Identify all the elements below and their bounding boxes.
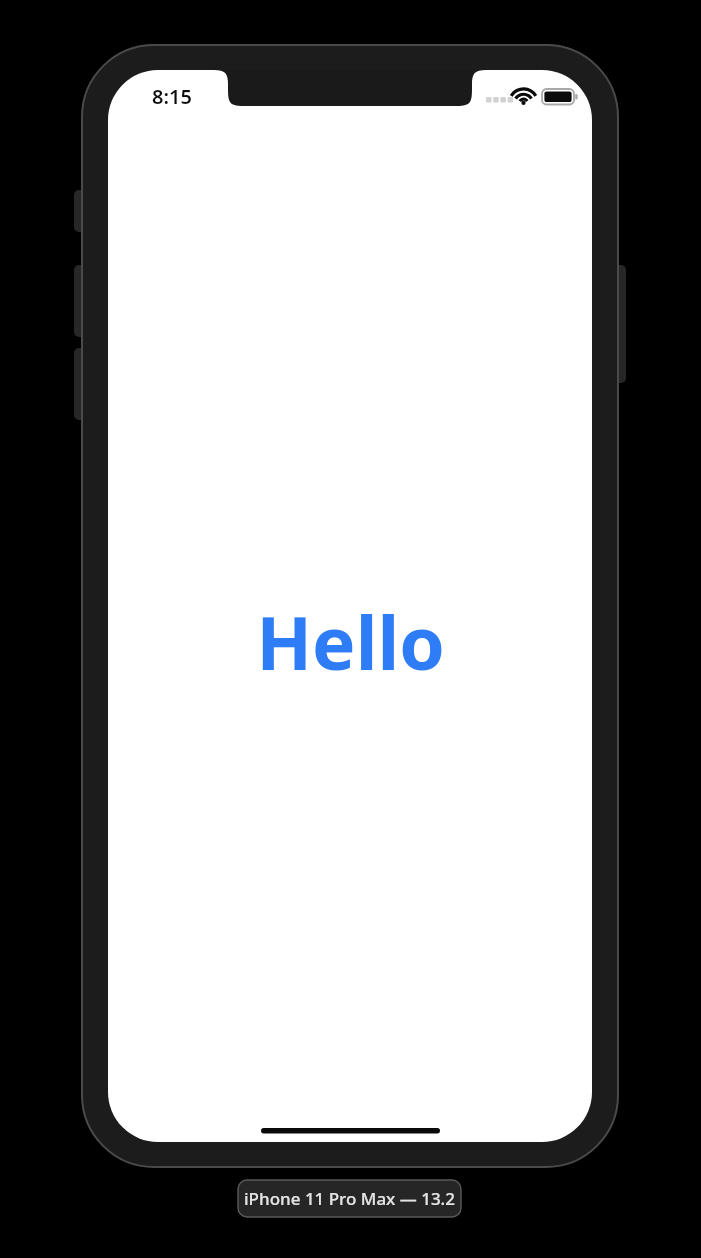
button[interactable]: Power <box>614 265 626 383</box>
button[interactable]: Silent switch <box>74 190 86 232</box>
button[interactable]: Hello <box>256 592 445 691</box>
staticText: iPhone 11 Pro Max — 13.2 <box>244 1187 455 1210</box>
button[interactable]: iPhone 11 Pro Max — 13.2 <box>238 1180 461 1217</box>
button[interactable]: Home indicator <box>261 1118 440 1142</box>
button[interactable]: Volume down <box>74 348 86 420</box>
staticText: 8:15 <box>152 83 192 109</box>
button[interactable]: Volume up <box>74 265 86 337</box>
